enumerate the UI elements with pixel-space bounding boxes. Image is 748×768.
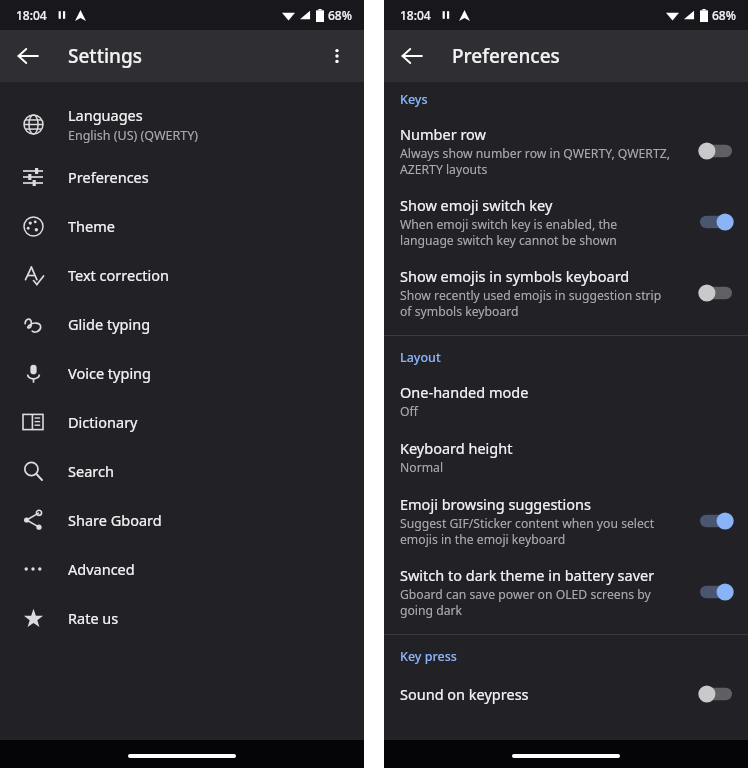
button[interactable]: Toggle off — [696, 138, 736, 164]
button[interactable]: Search — [0, 446, 364, 495]
staticText: One-handed mode — [400, 382, 529, 402]
button[interactable]: Show emoji switch key — [384, 187, 748, 258]
staticText: Keyboard height — [400, 438, 513, 458]
button[interactable]: Dictionary — [0, 397, 364, 446]
staticText: Rate us — [68, 608, 119, 628]
button[interactable]: Glide typing — [0, 299, 364, 348]
staticText: Preferences — [452, 43, 560, 69]
staticText: Glide typing — [68, 314, 151, 334]
button[interactable]: Back — [6, 34, 50, 78]
staticText: Off — [400, 403, 418, 420]
button[interactable]: More options — [316, 35, 358, 77]
staticText: Keys — [400, 91, 428, 108]
button[interactable]: Theme — [0, 201, 364, 250]
staticText: Settings — [68, 43, 142, 69]
staticText: Languages — [68, 105, 143, 125]
staticText: Voice typing — [68, 363, 151, 383]
button[interactable]: Switch to dark theme in battery saver — [384, 557, 748, 628]
button[interactable]: Keyboard height — [384, 430, 748, 486]
staticText: When emoji switch key is enabled, the la… — [400, 216, 618, 248]
staticText: Theme — [68, 216, 115, 236]
staticText: Advanced — [68, 559, 135, 579]
button[interactable]: Toggle on — [696, 209, 736, 235]
button[interactable]: Voice typing — [0, 348, 364, 397]
button[interactable]: Toggle on — [696, 508, 736, 534]
button[interactable]: Languages — [0, 96, 364, 152]
button[interactable]: Preferences — [0, 152, 364, 201]
staticText: Show recently used emojis in suggestion … — [400, 287, 662, 319]
staticText: Preferences — [68, 167, 149, 187]
staticText: English (US) (QWERTY) — [68, 127, 199, 144]
staticText: Dictionary — [68, 412, 138, 432]
button[interactable]: Toggle off — [696, 681, 736, 707]
button[interactable]: One-handed mode — [384, 374, 748, 430]
staticText: Show emoji switch key — [400, 195, 553, 215]
button[interactable]: Rate us — [0, 593, 364, 642]
button[interactable]: Sound on keypress — [384, 673, 748, 717]
button[interactable]: Share Gboard — [0, 495, 364, 544]
staticText: Suggest GIF/Sticker content when you sel… — [400, 515, 655, 547]
button[interactable]: Number row — [384, 116, 748, 187]
staticText: Switch to dark theme in battery saver — [400, 565, 655, 585]
staticText: Gboard can save power on OLED screens by… — [400, 586, 651, 618]
button[interactable]: Show emojis in symbols keyboard — [384, 258, 748, 329]
button[interactable]: Text correction — [0, 250, 364, 299]
staticText: Text correction — [68, 265, 169, 285]
button[interactable]: Toggle on — [696, 579, 736, 605]
staticText: 68% — [328, 7, 352, 23]
button[interactable]: Toggle off — [696, 280, 736, 306]
button[interactable]: Emoji browsing suggestions — [384, 486, 748, 557]
staticText: Number row — [400, 124, 486, 144]
staticText: Emoji browsing suggestions — [400, 494, 591, 514]
staticText: Sound on keypress — [400, 684, 529, 704]
staticText: Search — [68, 461, 114, 481]
button[interactable]: Advanced — [0, 544, 364, 593]
staticText: 68% — [712, 7, 736, 23]
staticText: Always show number row in QWERTY, QWERTZ… — [400, 145, 670, 177]
staticText: Normal — [400, 459, 444, 476]
button[interactable]: Back — [390, 34, 434, 78]
staticText: Layout — [400, 349, 441, 366]
staticText: Share Gboard — [68, 510, 162, 530]
staticText: 18:04 — [16, 7, 47, 23]
staticText: Key press — [400, 648, 457, 665]
staticText: 18:04 — [400, 7, 431, 23]
staticText: Show emojis in symbols keyboard — [400, 266, 630, 286]
